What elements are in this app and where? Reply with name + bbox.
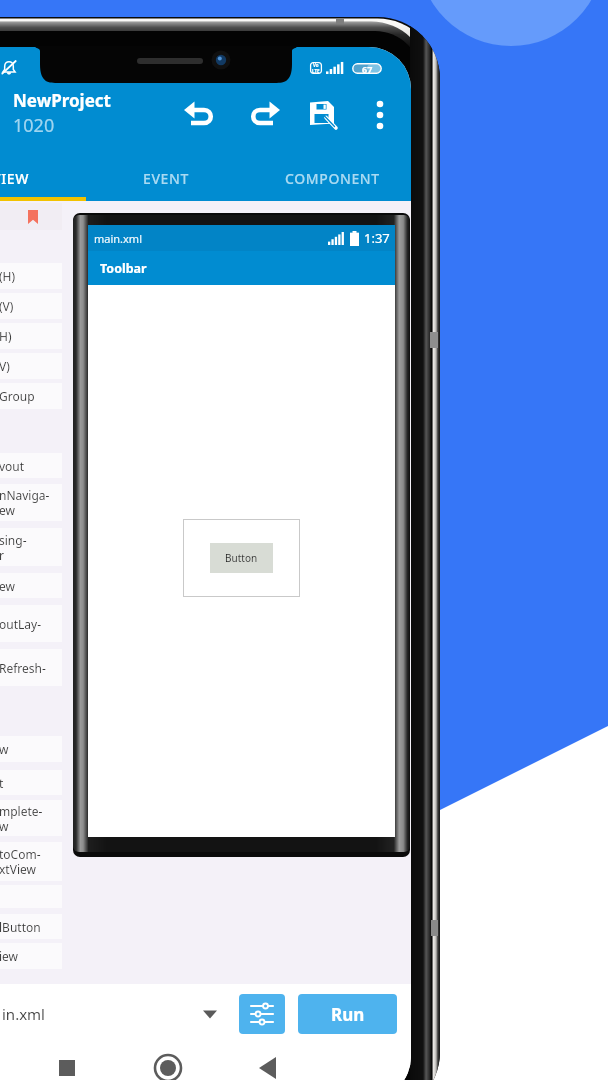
button[interactable]: Button [210,543,273,573]
staticText: outLay- [0,616,42,632]
button[interactable]: EVENT [86,155,246,201]
button[interactable]: COMPONENT [246,155,411,201]
staticText: ew [0,578,15,594]
button[interactable]: ew [0,573,62,598]
staticText: Vo [313,62,319,68]
button[interactable]: t [0,770,62,795]
button[interactable]: nNaviga- ew [0,484,62,521]
button[interactable]: Run [298,994,397,1034]
button[interactable]: Redo [238,91,286,139]
staticText: 67 [362,63,373,74]
staticText: 1020 [13,113,55,138]
staticText: H) [0,328,12,344]
staticText: (V) [0,298,14,314]
button[interactable]: Recents [47,1048,87,1080]
staticText: mplete- w [0,803,43,834]
staticText: (H) [0,268,16,284]
button[interactable]: VIEW [0,155,82,201]
button[interactable]: iew [0,943,62,969]
button[interactable]: lButton [0,914,62,939]
button[interactable]: vout [0,453,62,478]
staticText: Run [331,1003,365,1026]
staticText: in.xml [2,1004,45,1024]
staticText: w [0,741,9,757]
staticText: Group [0,388,35,404]
staticText: V) [0,358,10,374]
staticText: EVENT [143,169,189,188]
staticText: 1:37 [364,229,390,247]
staticText: t [0,775,4,791]
button[interactable]: toCom- xtView [0,842,62,881]
button[interactable]: outLay- [0,605,62,642]
button[interactable]: Save [298,91,346,139]
button[interactable]: (V) [0,293,62,319]
staticText: Toolbar [100,260,147,277]
button[interactable]: Project settings [239,994,285,1034]
button[interactable]: More options [356,91,404,139]
staticText: VIEW [0,169,29,188]
button[interactable]: H) [0,323,62,349]
staticText: nNaviga- ew [0,487,50,518]
staticText: sing- r [0,532,27,563]
staticText: lButton [0,919,41,935]
button[interactable]: sing- r [0,528,62,566]
button[interactable]: Select file [196,1000,224,1028]
button[interactable]: Group [0,383,62,409]
button[interactable]: Home [148,1048,188,1080]
button[interactable]: w [0,736,62,762]
staticText: LTE [312,68,320,74]
other: Notifications off [1,60,17,77]
button[interactable]: Favourites [0,203,62,230]
staticText: Refresh- [0,660,46,676]
button[interactable]: Refresh- [0,649,62,686]
staticText: COMPONENT [285,169,380,188]
button[interactable]: Undo [178,91,226,139]
button[interactable]: V) [0,353,62,379]
staticText: main.xml [94,231,142,246]
staticText: Button [225,551,258,565]
button[interactable]: (H) [0,263,62,289]
staticText: vout [0,458,25,474]
staticText: NewProject [13,89,111,112]
button[interactable]: mplete- w [0,800,62,836]
button[interactable]: Back [248,1048,288,1080]
staticText: toCom- xtView [0,846,41,877]
staticText: iew [0,948,19,964]
